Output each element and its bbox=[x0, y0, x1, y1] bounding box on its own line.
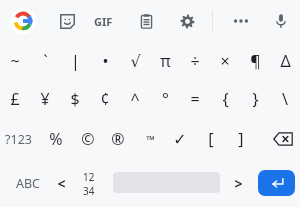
button[interactable]: Settings bbox=[175, 9, 199, 33]
staticText: • bbox=[102, 50, 109, 72]
button[interactable]: £ bbox=[0, 82, 30, 116]
button[interactable]: { bbox=[210, 82, 240, 116]
staticText: GIF bbox=[94, 14, 113, 29]
button[interactable]: More options bbox=[228, 9, 254, 33]
button[interactable]: Google bbox=[10, 8, 36, 34]
button[interactable]: ® bbox=[103, 122, 133, 156]
staticText: ¥ bbox=[40, 88, 50, 110]
button[interactable]: < bbox=[46, 166, 76, 200]
button[interactable]: = bbox=[180, 82, 210, 116]
staticText: { bbox=[222, 88, 229, 110]
staticText: < bbox=[57, 174, 66, 193]
button[interactable]: © bbox=[73, 122, 103, 156]
staticText: ^ bbox=[130, 88, 140, 110]
button[interactable]: ` bbox=[30, 44, 60, 78]
button[interactable]: ABC bbox=[8, 170, 48, 196]
button[interactable]: | bbox=[60, 44, 90, 78]
staticText: \ bbox=[282, 88, 288, 110]
staticText: ~ bbox=[10, 50, 20, 72]
staticText: ° bbox=[162, 88, 169, 110]
button[interactable]: ¥ bbox=[30, 82, 60, 116]
button[interactable]: % bbox=[41, 122, 71, 156]
button[interactable]: ¶ bbox=[240, 44, 270, 78]
staticText: ?123 bbox=[5, 131, 32, 148]
staticText: Δ bbox=[280, 50, 291, 72]
staticText: ™ bbox=[146, 132, 155, 147]
staticText: ABC bbox=[16, 175, 41, 192]
staticText: © bbox=[81, 128, 95, 150]
staticText: [ bbox=[208, 128, 214, 150]
button[interactable]: GIF bbox=[88, 9, 118, 33]
button[interactable]: ~ bbox=[0, 44, 30, 78]
staticText: = bbox=[190, 88, 200, 110]
button[interactable]: ¢ bbox=[90, 82, 120, 116]
button[interactable]: $ bbox=[60, 82, 90, 116]
button[interactable]: Stickers bbox=[55, 9, 79, 33]
button[interactable]: Clipboard bbox=[134, 9, 158, 33]
button[interactable]: ?123 bbox=[3, 122, 33, 156]
staticText: ] bbox=[238, 128, 244, 150]
button[interactable]: Voice input bbox=[268, 8, 294, 34]
staticText: | bbox=[71, 50, 80, 72]
button[interactable]: } bbox=[240, 82, 270, 116]
button[interactable]: Δ bbox=[270, 44, 300, 78]
staticText: ✓ bbox=[173, 130, 187, 149]
staticText: ¢ bbox=[100, 88, 110, 110]
button[interactable]: √ bbox=[120, 44, 150, 78]
staticText: ® bbox=[111, 128, 125, 150]
staticText: × bbox=[220, 50, 230, 72]
button[interactable]: \ bbox=[270, 82, 300, 116]
button[interactable]: 12 bbox=[76, 170, 102, 196]
staticText: $ bbox=[70, 88, 80, 110]
button[interactable]: ] bbox=[226, 122, 256, 156]
button[interactable]: Enter bbox=[258, 170, 295, 196]
button[interactable]: ™ bbox=[135, 122, 165, 156]
staticText: 12 bbox=[83, 170, 95, 184]
staticText: > bbox=[234, 174, 243, 193]
staticText: ¶ bbox=[250, 50, 261, 72]
button[interactable]: × bbox=[210, 44, 240, 78]
button[interactable]: > bbox=[223, 166, 253, 200]
button[interactable]: [ bbox=[196, 122, 226, 156]
staticText: ` bbox=[43, 50, 48, 72]
staticText: 34 bbox=[83, 184, 95, 196]
button[interactable]: ^ bbox=[120, 82, 150, 116]
staticText: % bbox=[49, 128, 63, 150]
button[interactable]: Backspace bbox=[268, 126, 298, 152]
staticText: £ bbox=[10, 88, 20, 110]
staticText: } bbox=[252, 88, 259, 110]
button[interactable]: ÷ bbox=[180, 44, 210, 78]
button[interactable]: • bbox=[90, 44, 120, 78]
button[interactable]: ° bbox=[150, 82, 180, 116]
staticText: π bbox=[160, 50, 171, 72]
staticText: √ bbox=[130, 52, 141, 71]
button[interactable]: π bbox=[150, 44, 180, 78]
button[interactable]: ✓ bbox=[165, 122, 195, 156]
staticText: ÷ bbox=[190, 50, 200, 72]
